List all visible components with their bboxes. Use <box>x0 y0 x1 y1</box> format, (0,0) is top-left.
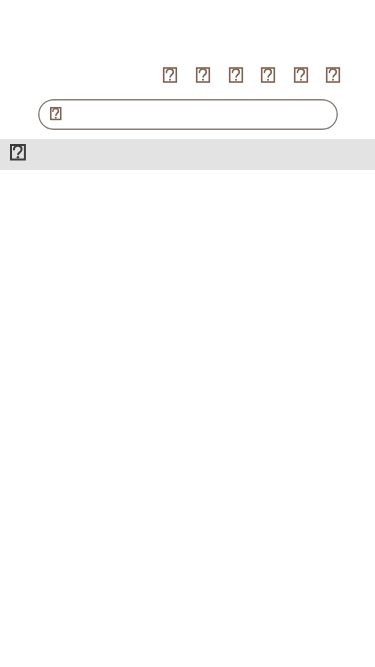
button[interactable]: More options <box>317 59 349 91</box>
button[interactable]: Reload page <box>154 59 186 91</box>
button[interactable]: Find in page <box>285 59 317 91</box>
button[interactable]: Page notification <box>0 139 375 170</box>
button[interactable]: Bookmark <box>187 59 219 91</box>
button[interactable]: Share <box>252 59 284 91</box>
button[interactable]: Search or type web address <box>38 99 338 130</box>
button[interactable]: Downloads <box>220 59 252 91</box>
